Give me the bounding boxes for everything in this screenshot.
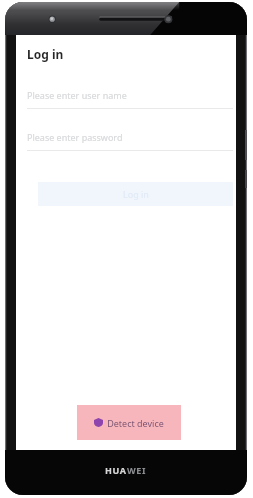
staticText: Detect device <box>107 417 164 429</box>
staticText: WEI <box>127 464 147 476</box>
button[interactable]: Security shield <box>77 405 181 440</box>
staticText: HUA <box>105 464 127 476</box>
staticText: Please enter user name <box>27 89 127 101</box>
staticText: Log in <box>27 46 64 62</box>
staticText: Log in <box>123 188 149 200</box>
staticText: Please enter password <box>27 131 123 143</box>
other: Security shield <box>94 418 103 427</box>
